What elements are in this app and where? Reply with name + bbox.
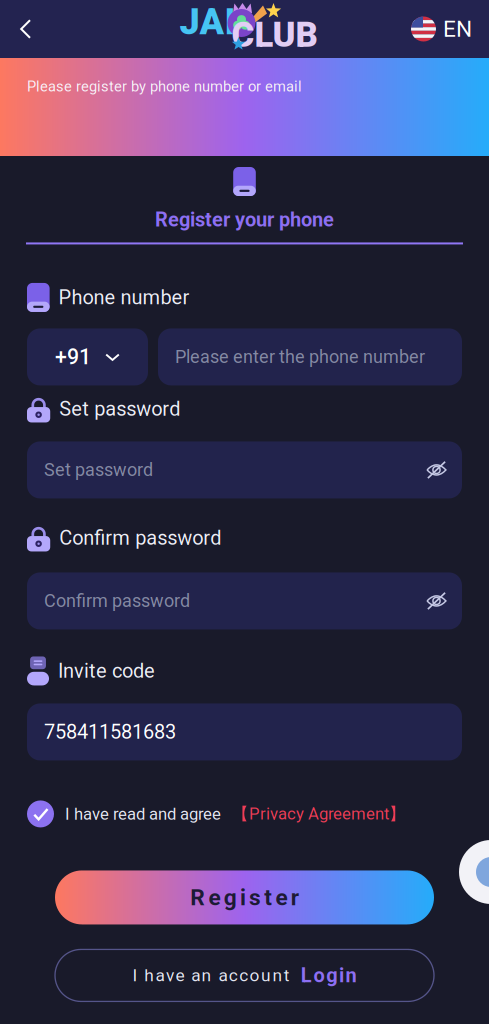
staticText: i bbox=[240, 884, 246, 911]
staticText: t bbox=[284, 965, 290, 986]
staticText: c bbox=[239, 965, 248, 986]
staticText: e bbox=[208, 884, 220, 911]
button[interactable]: Please enter the phone number bbox=[158, 328, 462, 385]
staticText: v bbox=[166, 965, 174, 986]
staticText: h bbox=[144, 965, 154, 986]
staticText: Confirm password bbox=[59, 526, 221, 550]
staticText: a bbox=[156, 965, 165, 986]
staticText: EN bbox=[443, 16, 472, 42]
staticText: 【Privacy Agreement】 bbox=[232, 803, 406, 824]
button[interactable]: Agree to the privacy agreement bbox=[27, 800, 65, 827]
staticText: Please enter the phone number bbox=[175, 346, 425, 367]
staticText: a bbox=[218, 965, 227, 986]
staticText: t bbox=[264, 884, 272, 911]
staticText: I bbox=[132, 965, 137, 986]
staticText: JAI bbox=[179, 1, 235, 43]
staticText: u bbox=[261, 965, 271, 986]
staticText: R bbox=[190, 884, 205, 911]
staticText: Confirm password bbox=[44, 590, 190, 611]
staticText: g bbox=[224, 884, 237, 911]
staticText: e bbox=[275, 884, 287, 911]
staticText: 758411581683 bbox=[44, 720, 176, 744]
staticText: Set password bbox=[59, 397, 180, 421]
button[interactable]: 【Privacy Agreement】 bbox=[232, 803, 406, 824]
staticText: e bbox=[175, 965, 184, 986]
staticText: I have read and agree bbox=[65, 804, 221, 824]
staticText: n bbox=[346, 964, 357, 987]
staticText: r bbox=[291, 884, 299, 911]
button[interactable]: I bbox=[0, 949, 489, 1001]
button[interactable]: Customer service bbox=[459, 840, 489, 904]
staticText: n bbox=[202, 965, 212, 986]
staticText: g bbox=[326, 964, 337, 987]
staticText: a bbox=[191, 965, 200, 986]
button[interactable]: +91 bbox=[27, 328, 148, 385]
button[interactable]: R bbox=[0, 870, 489, 924]
staticText: i bbox=[339, 964, 344, 987]
staticText: L bbox=[301, 964, 312, 987]
staticText: n bbox=[272, 965, 282, 986]
staticText: Set password bbox=[44, 459, 153, 480]
button[interactable]: Back bbox=[0, 0, 52, 58]
staticText: +91 bbox=[55, 344, 91, 369]
staticText: o bbox=[313, 964, 324, 987]
staticText: Please register by phone number or email bbox=[27, 78, 302, 95]
button[interactable]: Set password bbox=[27, 441, 462, 498]
staticText: o bbox=[250, 965, 260, 986]
staticText: c bbox=[229, 965, 238, 986]
staticText: Register your phone bbox=[155, 208, 334, 231]
button[interactable]: Language English bbox=[411, 0, 489, 58]
staticText: s bbox=[249, 884, 261, 911]
staticText: Invite code bbox=[58, 659, 155, 683]
button[interactable]: 758411581683 bbox=[27, 703, 462, 760]
staticText: CLUB bbox=[231, 15, 317, 55]
button[interactable]: Confirm password bbox=[27, 572, 462, 629]
staticText: Phone number bbox=[59, 286, 190, 309]
